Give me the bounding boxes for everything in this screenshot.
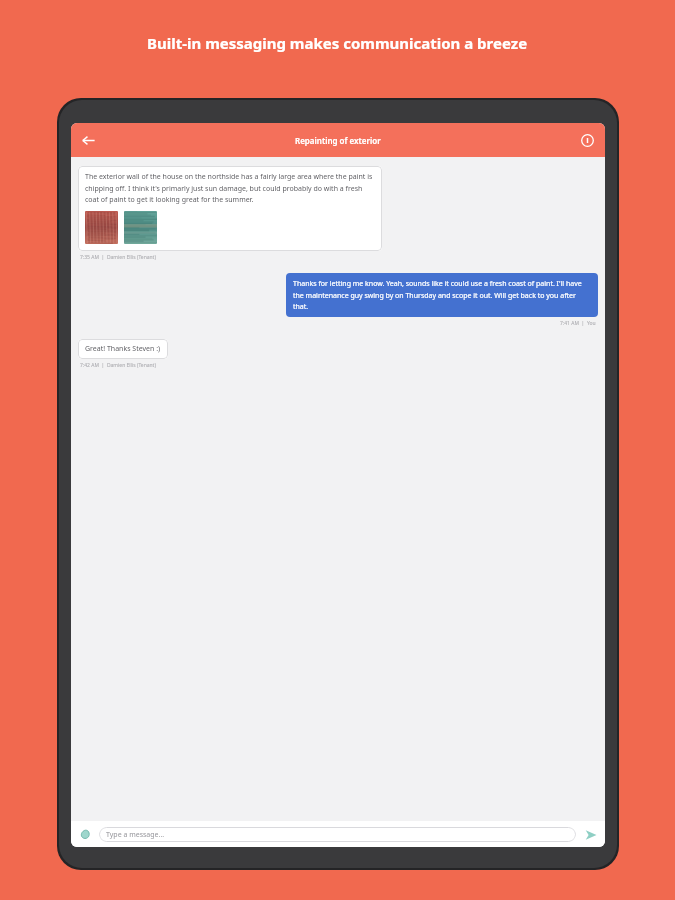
staticText: 7:42 AM | Damien Ellis (Tenant): [80, 362, 156, 369]
button[interactable]: Photo of chipped brick wall: [85, 211, 118, 244]
button[interactable]: Details: [573, 126, 601, 154]
button[interactable]: The exterior wall of the house on the no…: [78, 166, 382, 251]
staticText: Thanks for letting me know. Yeah, sounds…: [293, 279, 591, 311]
staticText: 7:35 AM | Damien Ellis (Tenant): [80, 254, 156, 261]
button[interactable]: Great! Thanks Steven :): [78, 339, 168, 359]
button[interactable]: Attach file: [77, 826, 94, 843]
button[interactable]: Type a message...: [99, 827, 576, 842]
staticText: The exterior wall of the house on the no…: [85, 172, 375, 204]
button[interactable]: Send: [582, 826, 599, 843]
staticText: Type a message...: [106, 830, 165, 840]
button[interactable]: Photo of wall: [124, 211, 157, 244]
button[interactable]: Thanks for letting me know. Yeah, sounds…: [286, 273, 598, 317]
staticText: Great! Thanks Steven :): [85, 344, 161, 354]
staticText: Built-in messaging makes communication a…: [147, 33, 528, 53]
staticText: Repainting of exterior: [295, 135, 381, 146]
staticText: 7:41 AM | You: [560, 320, 596, 327]
button[interactable]: Back: [74, 126, 102, 154]
